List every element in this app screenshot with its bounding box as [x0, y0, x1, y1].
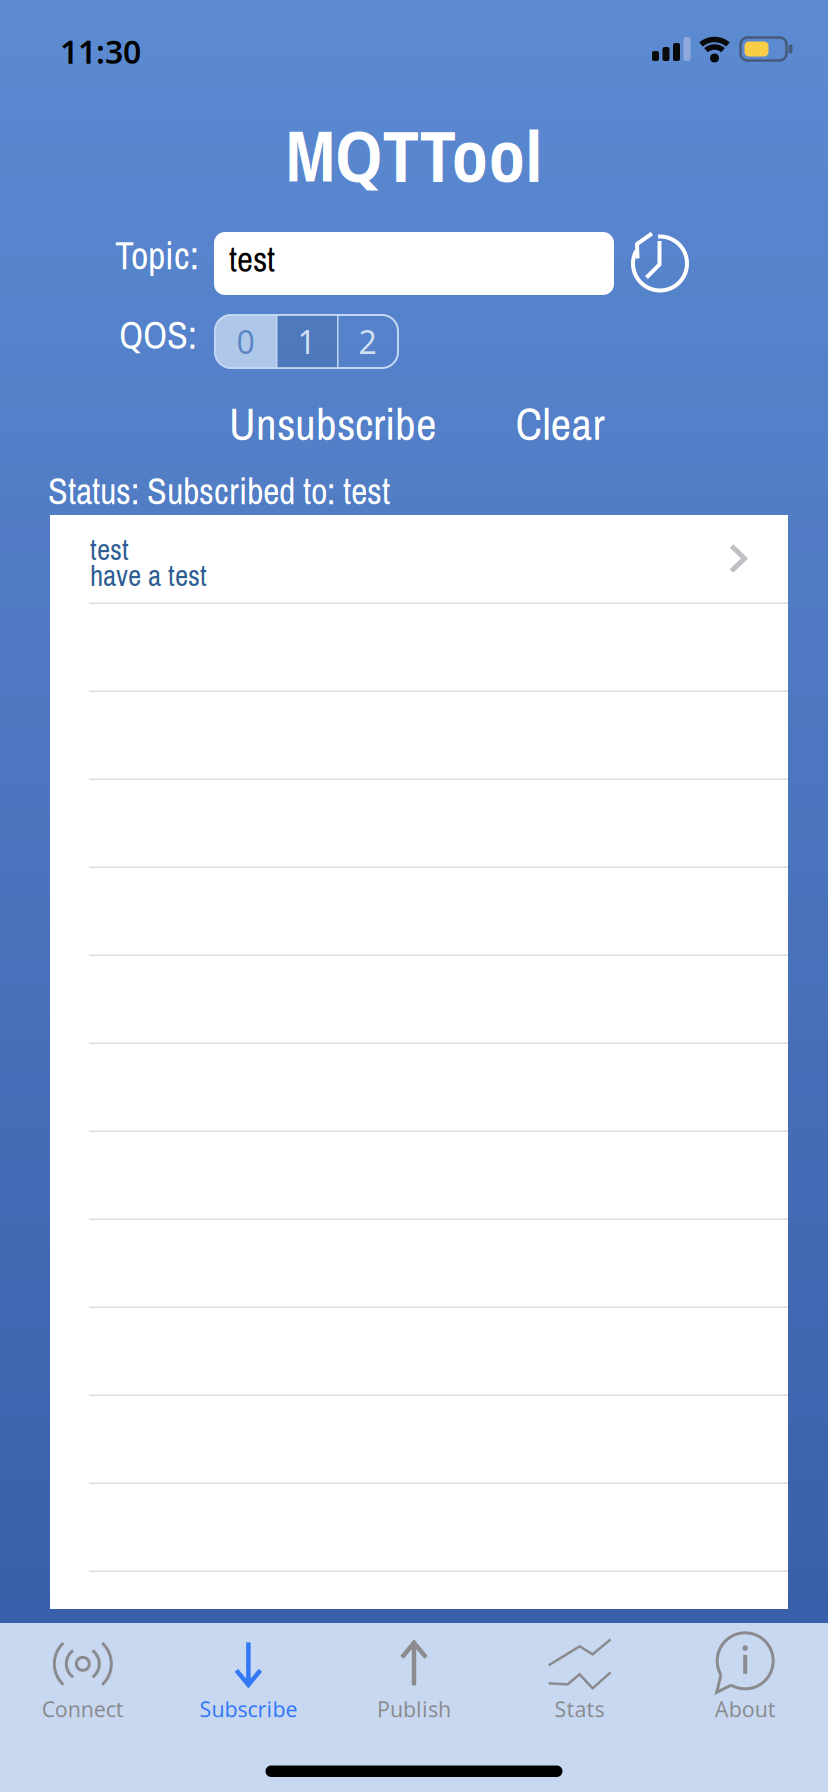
button[interactable]: test — [214, 232, 614, 295]
staticText: Unsubscribe — [229, 393, 437, 454]
button[interactable]: Topic history — [630, 233, 690, 293]
staticText: have a test — [90, 556, 207, 595]
button[interactable]: 2 — [337, 315, 398, 368]
staticText: Publish — [377, 1695, 451, 1723]
staticText: test — [90, 530, 129, 569]
button[interactable]: Subscribe — [166, 1631, 331, 1731]
staticText: 11:30 — [60, 30, 141, 72]
staticText: 2 — [358, 320, 376, 363]
staticText: Subscribe — [199, 1695, 297, 1723]
button[interactable]: Publish — [331, 1631, 497, 1731]
staticText: Status: Subscribed to: test — [48, 467, 390, 515]
button[interactable]: Connect — [0, 1631, 166, 1731]
button[interactable]: 0 — [215, 315, 276, 368]
button[interactable]: About — [662, 1631, 828, 1731]
button[interactable]: Clear — [515, 393, 604, 454]
staticText: About — [715, 1695, 776, 1723]
staticText: MQTTool — [285, 106, 542, 204]
button[interactable]: 1 — [276, 315, 337, 368]
staticText: Clear — [515, 393, 604, 454]
staticText: 0 — [236, 320, 254, 363]
staticText: 1 — [297, 320, 315, 363]
button[interactable]: Unsubscribe — [229, 393, 437, 454]
staticText: Stats — [555, 1695, 605, 1723]
staticText: QOS: — [119, 309, 197, 360]
button[interactable]: test — [50, 515, 788, 602]
staticText: Topic: — [115, 230, 199, 281]
staticText: test — [229, 235, 275, 283]
staticText: Connect — [42, 1695, 124, 1723]
button[interactable]: Stats — [497, 1631, 662, 1731]
